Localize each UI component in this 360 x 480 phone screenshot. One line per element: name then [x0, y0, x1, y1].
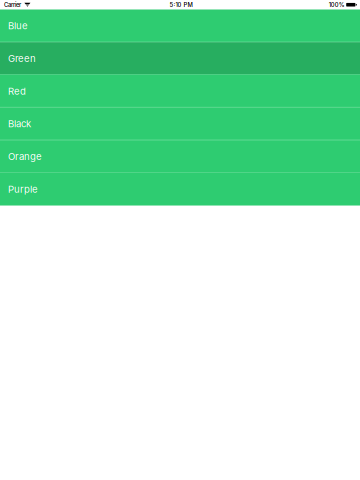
button[interactable]: Red [0, 75, 360, 107]
button[interactable]: Purple [0, 173, 360, 206]
button[interactable]: Green [0, 42, 360, 75]
button[interactable]: Orange [0, 140, 360, 173]
staticText: 5:10 PM [169, 1, 192, 8]
staticText: Black [8, 118, 31, 130]
staticText: Carrier [4, 1, 21, 8]
staticText: Red [8, 85, 26, 97]
staticText: Blue [8, 20, 28, 32]
staticText: 100% [329, 1, 345, 8]
button[interactable]: Black [0, 107, 360, 140]
staticText: Purple [8, 183, 38, 195]
staticText: Green [8, 53, 36, 64]
button[interactable]: Blue [0, 9, 360, 42]
staticText: Orange [8, 151, 42, 162]
